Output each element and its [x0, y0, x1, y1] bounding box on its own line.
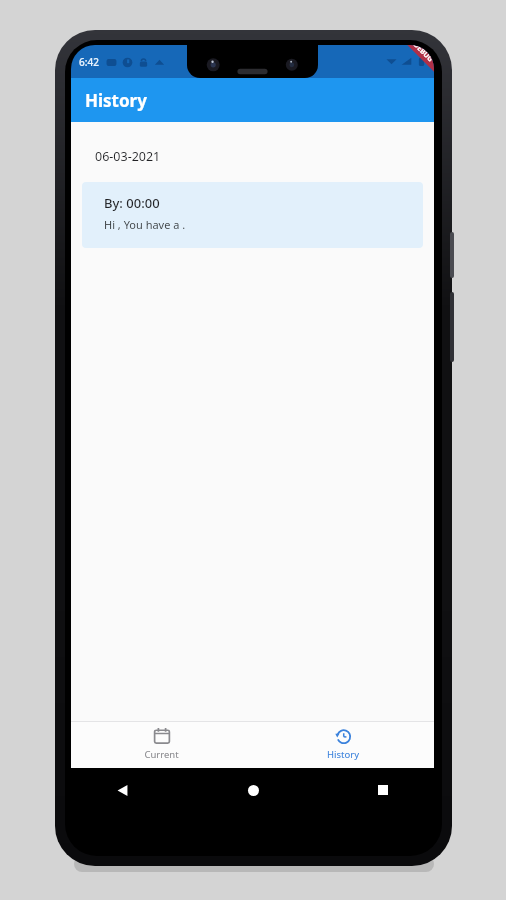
other: History [334, 727, 352, 745]
staticText: Hi , You have a . [104, 217, 186, 232]
other: Current [153, 727, 171, 745]
staticText: By: 00:00 [104, 194, 160, 212]
staticText: 06-03-2021 [95, 148, 161, 165]
button[interactable]: Back [107, 775, 137, 805]
staticText: History [327, 748, 359, 761]
button[interactable]: Current [71, 722, 252, 768]
staticText: Current [144, 748, 179, 761]
button[interactable]: History [252, 722, 434, 768]
staticText: 6:42 [79, 55, 99, 69]
button[interactable]: Home [238, 775, 268, 805]
staticText: History [85, 89, 147, 112]
staticText: DEBUG [411, 45, 434, 65]
button[interactable]: Recent apps [368, 775, 398, 805]
button[interactable]: By: 00:00 [82, 182, 423, 248]
